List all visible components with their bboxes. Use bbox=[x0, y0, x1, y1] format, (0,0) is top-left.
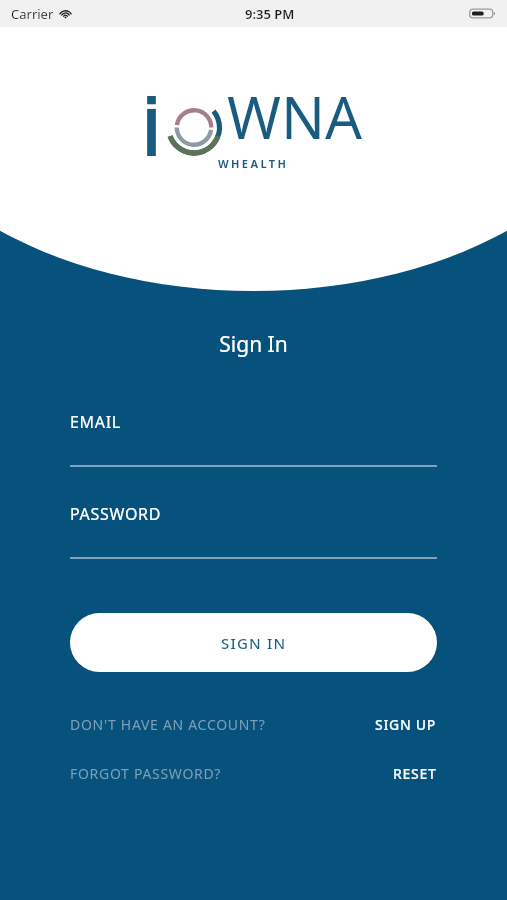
staticText: WHEALTH bbox=[218, 156, 289, 171]
button[interactable]: DON'T HAVE AN ACCOUNT? bbox=[70, 715, 266, 734]
button[interactable]: SIGN IN bbox=[70, 613, 437, 672]
staticText: RESET bbox=[393, 764, 437, 783]
button[interactable]: PASSWORD bbox=[70, 503, 437, 559]
staticText: WNA bbox=[227, 77, 363, 156]
button[interactable]: EMAIL bbox=[70, 411, 437, 467]
button[interactable]: RESET bbox=[393, 764, 437, 783]
staticText: PASSWORD bbox=[70, 503, 162, 525]
staticText: Carrier bbox=[11, 5, 54, 23]
button[interactable]: FORGOT PASSWORD? bbox=[70, 764, 222, 783]
button[interactable]: SIGN UP bbox=[375, 715, 437, 734]
staticText: 9:35 PM bbox=[245, 5, 295, 23]
staticText: EMAIL bbox=[70, 411, 121, 433]
staticText: SIGN IN bbox=[221, 633, 287, 653]
staticText: SIGN UP bbox=[375, 715, 437, 734]
staticText: Sign In bbox=[0, 330, 507, 359]
staticText: FORGOT PASSWORD? bbox=[70, 764, 222, 783]
staticText: DON'T HAVE AN ACCOUNT? bbox=[70, 715, 266, 734]
